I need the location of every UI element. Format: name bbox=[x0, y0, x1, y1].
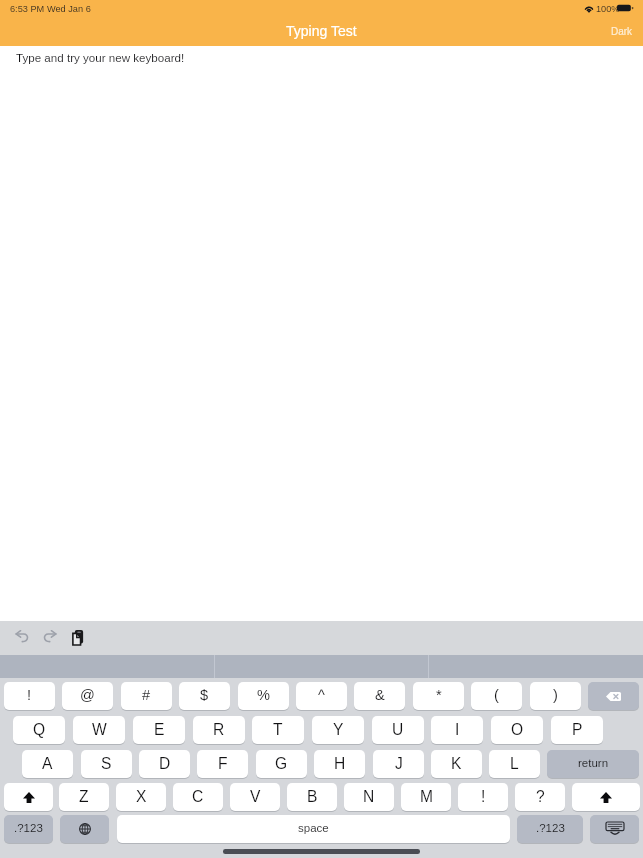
staticText: Y bbox=[333, 721, 344, 738]
staticText: 6:53 PM bbox=[10, 4, 45, 14]
staticText: Q bbox=[33, 721, 46, 738]
staticText: ^ bbox=[318, 687, 325, 703]
staticText: O bbox=[511, 721, 524, 738]
staticText: # bbox=[142, 687, 151, 703]
button[interactable]: Backspace bbox=[588, 682, 639, 710]
staticText: F bbox=[218, 755, 228, 772]
staticText: D bbox=[159, 755, 171, 772]
button[interactable]: U bbox=[372, 716, 424, 744]
button[interactable]: % bbox=[238, 682, 289, 710]
staticText: Typing Test bbox=[286, 23, 357, 39]
button[interactable]: T bbox=[252, 716, 304, 744]
staticText: & bbox=[375, 687, 385, 703]
staticText: .?123 bbox=[14, 822, 43, 835]
button[interactable]: @ bbox=[62, 682, 113, 710]
button[interactable]: G bbox=[256, 750, 307, 778]
button[interactable]: A bbox=[22, 750, 73, 778]
button[interactable]: Shift bbox=[572, 783, 640, 811]
button[interactable]: C bbox=[173, 783, 223, 811]
button[interactable]: Shift bbox=[4, 783, 53, 811]
button[interactable]: S bbox=[81, 750, 132, 778]
staticText: W bbox=[92, 721, 107, 738]
button[interactable]: Z bbox=[59, 783, 109, 811]
staticText: J bbox=[395, 755, 403, 772]
button[interactable]: K bbox=[431, 750, 482, 778]
staticText: X bbox=[136, 788, 147, 805]
staticText: ? bbox=[536, 788, 545, 805]
button[interactable]: # bbox=[121, 682, 172, 710]
staticText: N bbox=[363, 788, 375, 805]
button[interactable]: Dark bbox=[611, 26, 633, 37]
button[interactable]: D bbox=[139, 750, 190, 778]
button[interactable]: L bbox=[489, 750, 540, 778]
staticText: space bbox=[298, 822, 329, 835]
button[interactable]: Y bbox=[312, 716, 364, 744]
button[interactable]: & bbox=[354, 682, 405, 710]
button[interactable]: Paste bbox=[70, 629, 86, 646]
staticText: $ bbox=[200, 687, 209, 703]
staticText: L bbox=[510, 755, 519, 772]
button[interactable]: P bbox=[551, 716, 603, 744]
staticText: Z bbox=[79, 788, 89, 805]
staticText: .?123 bbox=[536, 822, 565, 835]
staticText: Wed Jan 6 bbox=[47, 4, 91, 14]
staticText: T bbox=[273, 721, 283, 738]
staticText: M bbox=[420, 788, 433, 805]
staticText: I bbox=[455, 721, 460, 738]
button[interactable]: return bbox=[547, 750, 639, 778]
button[interactable]: F bbox=[197, 750, 248, 778]
staticText: U bbox=[392, 721, 404, 738]
button[interactable]: X bbox=[116, 783, 166, 811]
staticText: @ bbox=[80, 687, 95, 703]
button[interactable]: ? bbox=[515, 783, 565, 811]
button[interactable]: V bbox=[230, 783, 280, 811]
button[interactable]: ! bbox=[4, 682, 55, 710]
staticText: Dark bbox=[611, 26, 633, 37]
staticText: ( bbox=[494, 687, 499, 703]
staticText: 100% bbox=[596, 4, 620, 14]
staticText: P bbox=[572, 721, 583, 738]
staticText: ! bbox=[481, 788, 486, 805]
staticText: % bbox=[257, 687, 270, 703]
button[interactable]: H bbox=[314, 750, 365, 778]
button[interactable]: ( bbox=[471, 682, 522, 710]
button[interactable]: ! bbox=[458, 783, 508, 811]
staticText: Type and try your new keyboard! bbox=[16, 51, 185, 64]
button[interactable]: W bbox=[73, 716, 125, 744]
button[interactable]: .?123 bbox=[517, 815, 583, 843]
button[interactable]: .?123 bbox=[4, 815, 53, 843]
button[interactable]: R bbox=[193, 716, 245, 744]
staticText: * bbox=[436, 687, 442, 703]
staticText: E bbox=[154, 721, 165, 738]
staticText: H bbox=[334, 755, 346, 772]
staticText: C bbox=[192, 788, 204, 805]
staticText: G bbox=[275, 755, 288, 772]
button[interactable]: Undo bbox=[15, 630, 29, 642]
button[interactable]: Next keyboard bbox=[60, 815, 109, 843]
staticText: B bbox=[307, 788, 318, 805]
staticText: ) bbox=[553, 687, 558, 703]
button[interactable]: Redo bbox=[43, 630, 57, 642]
button[interactable]: O bbox=[491, 716, 543, 744]
button[interactable]: $ bbox=[179, 682, 230, 710]
button[interactable]: J bbox=[373, 750, 424, 778]
staticText: K bbox=[451, 755, 462, 772]
staticText: V bbox=[250, 788, 261, 805]
button[interactable]: N bbox=[344, 783, 394, 811]
button[interactable]: space bbox=[117, 815, 510, 843]
button[interactable]: ^ bbox=[296, 682, 347, 710]
button[interactable]: * bbox=[413, 682, 464, 710]
staticText: ! bbox=[27, 687, 32, 703]
button[interactable]: Hide keyboard bbox=[590, 815, 639, 843]
staticText: S bbox=[101, 755, 112, 772]
staticText: A bbox=[42, 755, 53, 772]
button[interactable]: B bbox=[287, 783, 337, 811]
staticText: R bbox=[213, 721, 225, 738]
button[interactable]: I bbox=[431, 716, 483, 744]
button[interactable]: Q bbox=[13, 716, 65, 744]
button[interactable]: ) bbox=[530, 682, 581, 710]
staticText: return bbox=[578, 757, 609, 770]
button[interactable]: M bbox=[401, 783, 451, 811]
button[interactable]: E bbox=[133, 716, 185, 744]
